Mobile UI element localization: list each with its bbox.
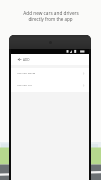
button[interactable]: ADD NEW DRIVER [11,68,89,80]
button[interactable]: ADD NEW CAR [11,80,89,92]
staticText: directly from the app [28,16,73,22]
staticText: Add new cars and drivers [23,10,79,16]
staticText: ADD NEW CAR [17,84,32,87]
button[interactable]: Back [11,54,23,65]
staticText: ADD [23,58,30,62]
staticText: ADD NEW DRIVER [17,72,36,75]
